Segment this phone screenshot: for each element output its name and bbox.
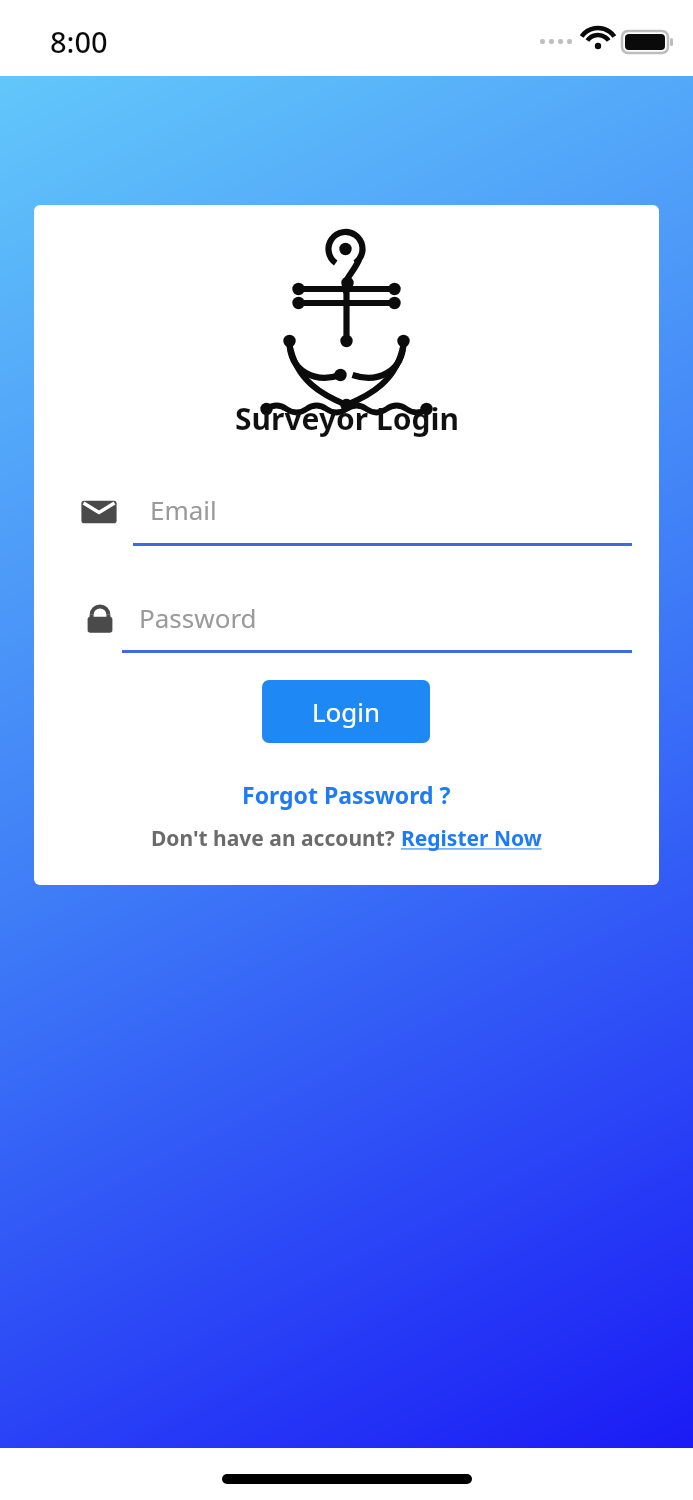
other: Email: [79, 492, 119, 532]
staticText: Don't have an account?: [151, 824, 401, 853]
staticText: Email: [150, 492, 217, 527]
button[interactable]: Login: [262, 680, 430, 743]
staticText: 8:00: [50, 22, 108, 61]
staticText: Surveyor Login: [235, 398, 459, 439]
staticText: Password: [139, 600, 257, 635]
staticText: Login: [312, 694, 381, 729]
staticText: Forgot Password ?: [242, 779, 451, 810]
staticText: Register Now: [401, 824, 542, 853]
button[interactable]: Forgot Password ?: [34, 775, 659, 813]
button[interactable]: Register Now: [401, 824, 542, 853]
button[interactable]: Password: [122, 588, 632, 653]
button[interactable]: Email: [133, 480, 632, 546]
other: Password: [80, 600, 120, 640]
